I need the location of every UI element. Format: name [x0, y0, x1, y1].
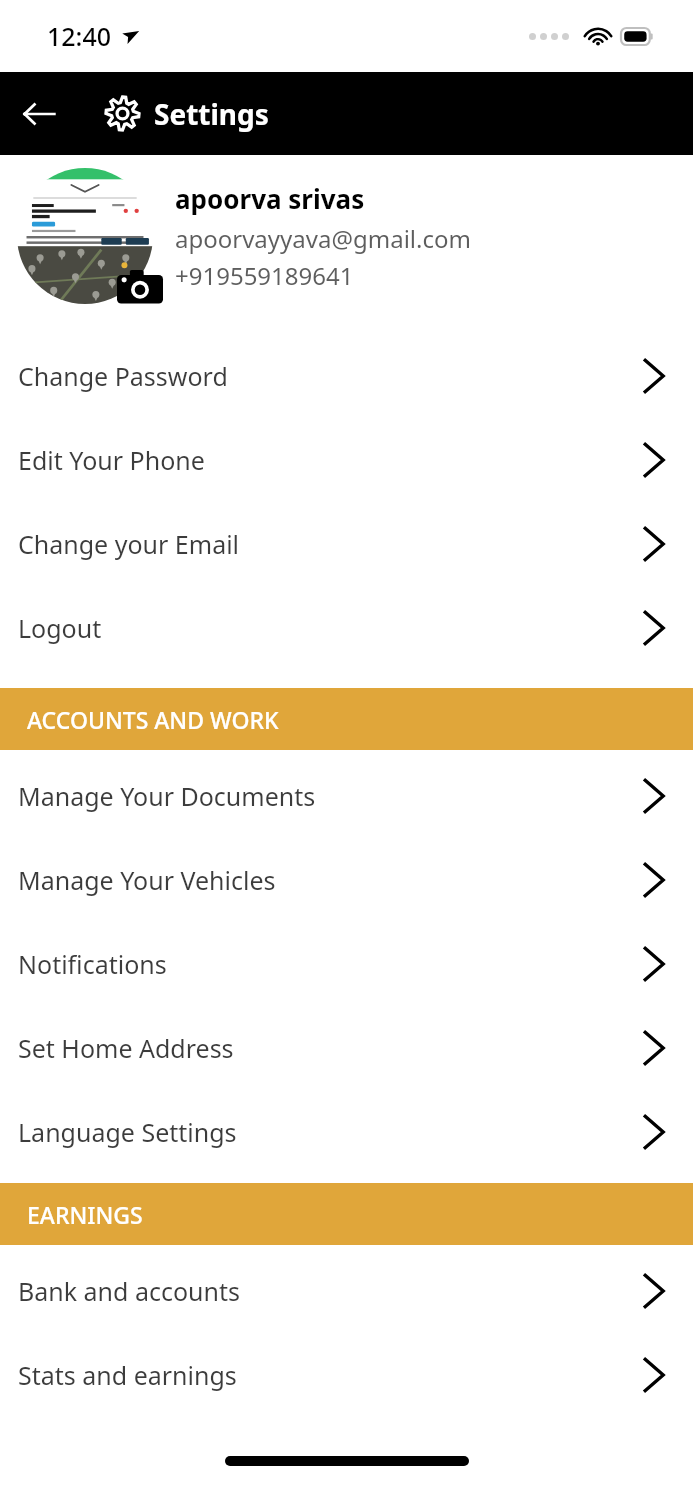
staticText: apoorva srivas [175, 181, 365, 216]
button[interactable]: Change your Email [0, 502, 693, 586]
staticText: Logout [18, 611, 102, 645]
button[interactable]: Stats and earnings [0, 1333, 693, 1417]
button[interactable]: Change Password [0, 334, 693, 418]
staticText: Manage Your Documents [18, 779, 316, 813]
button[interactable]: Edit Your Phone [0, 418, 693, 502]
button[interactable]: Manage Your Documents [0, 754, 693, 838]
staticText: Manage Your Vehicles [18, 863, 276, 897]
staticText: Set Home Address [18, 1031, 234, 1065]
button[interactable]: Change profile photo [117, 264, 163, 310]
button[interactable]: Notifications [0, 922, 693, 1006]
staticText: 12:40 [47, 19, 112, 53]
button[interactable]: Bank and accounts [0, 1249, 693, 1333]
staticText: Language Settings [18, 1115, 237, 1149]
staticText: EARNINGS [27, 1199, 143, 1230]
staticText: Stats and earnings [18, 1358, 237, 1392]
staticText: Notifications [18, 947, 167, 981]
staticText: apoorvayyava@gmail.com [175, 222, 471, 255]
staticText: Edit Your Phone [18, 443, 205, 477]
staticText: +919559189641 [175, 259, 354, 292]
button[interactable]: Logout [0, 586, 693, 670]
staticText: Bank and accounts [18, 1274, 240, 1308]
button[interactable]: Manage Your Vehicles [0, 838, 693, 922]
button[interactable]: Language Settings [0, 1090, 693, 1174]
staticText: Change your Email [18, 527, 240, 561]
button[interactable]: Back [14, 89, 64, 139]
staticText: Change Password [18, 359, 228, 393]
button[interactable]: Set Home Address [0, 1006, 693, 1090]
staticText: ACCOUNTS AND WORK [27, 704, 279, 735]
staticText: Settings [154, 95, 269, 133]
